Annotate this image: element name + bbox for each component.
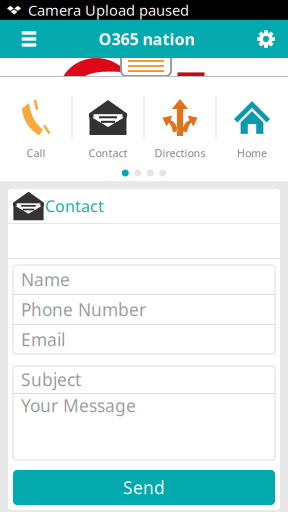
staticText: Contact xyxy=(45,195,104,217)
staticText: Send xyxy=(123,476,165,499)
button[interactable]: Send xyxy=(13,470,275,505)
button[interactable]: Call xyxy=(0,77,72,165)
staticText: Contact xyxy=(88,146,127,160)
staticText: Your Message xyxy=(21,394,136,417)
button[interactable]: Directions xyxy=(144,77,216,165)
staticText: Email xyxy=(21,328,65,351)
staticText: Home xyxy=(237,146,267,160)
button[interactable]: Contact xyxy=(72,77,144,165)
staticText: Subject xyxy=(21,368,81,391)
staticText: Camera Upload paused xyxy=(28,0,189,20)
staticText: Name xyxy=(21,268,70,291)
button[interactable]: Settings xyxy=(244,20,288,58)
button[interactable]: Home xyxy=(216,77,288,165)
staticText: Call xyxy=(26,146,45,160)
staticText: O365 nation xyxy=(98,28,194,50)
button[interactable]: Menu xyxy=(0,20,58,58)
staticText: Phone Number xyxy=(21,298,146,321)
staticText: Directions xyxy=(154,146,205,160)
